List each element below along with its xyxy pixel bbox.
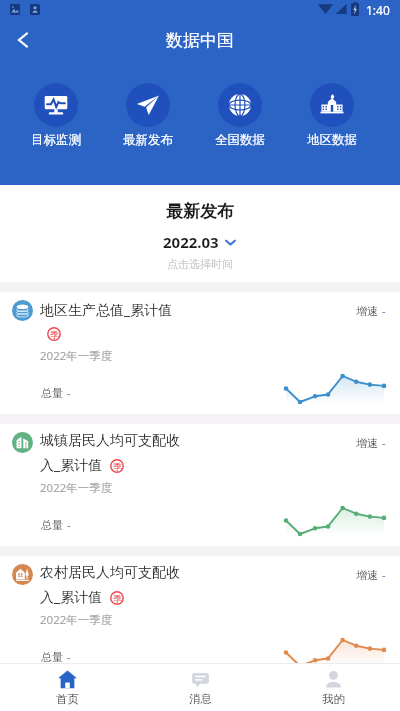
staticText: - bbox=[382, 303, 386, 318]
staticText: 总量 bbox=[41, 518, 63, 532]
staticText: 农村居民人均可支配收 bbox=[40, 564, 180, 582]
staticText: 消息 bbox=[189, 692, 212, 706]
button[interactable]: 目标监测 bbox=[9, 83, 102, 148]
button[interactable]: 地区生产总值_累计值 bbox=[0, 292, 400, 414]
staticText: 全国数据 bbox=[215, 132, 265, 148]
staticText: 增速 bbox=[356, 304, 378, 318]
button[interactable]: 地区数据 bbox=[286, 83, 378, 148]
staticText: 2022年一季度 bbox=[40, 480, 113, 496]
staticText: - bbox=[67, 385, 71, 400]
button[interactable]: Home bbox=[0, 664, 134, 711]
staticText: 2022年一季度 bbox=[40, 348, 113, 364]
staticText: 1:40 bbox=[366, 2, 390, 18]
staticText: 增速 bbox=[356, 436, 378, 450]
staticText: 2022年一季度 bbox=[40, 612, 113, 628]
staticText: 目标监测 bbox=[31, 132, 81, 148]
staticText: 总量 bbox=[41, 386, 63, 400]
button[interactable]: Messages bbox=[134, 664, 267, 711]
button[interactable]: 城镇居民人均可支配收 bbox=[0, 424, 400, 546]
staticText: 2022.03 bbox=[163, 232, 219, 252]
staticText: - bbox=[382, 435, 386, 450]
staticText: 点击选择时间 bbox=[167, 257, 233, 271]
other: Messages bbox=[191, 670, 210, 689]
staticText: 首页 bbox=[56, 692, 79, 706]
staticText: 最新发布 bbox=[166, 201, 234, 222]
other: Home bbox=[58, 670, 77, 689]
staticText: 季 bbox=[113, 593, 122, 604]
staticText: - bbox=[67, 649, 71, 664]
button[interactable]: 2022.03 bbox=[163, 232, 237, 252]
staticText: 入_累计值 bbox=[40, 455, 103, 474]
staticText: - bbox=[382, 567, 386, 582]
staticText: 季 bbox=[50, 329, 59, 340]
staticText: 地区生产总值_累计值 bbox=[40, 300, 173, 319]
staticText: 最新发布 bbox=[123, 132, 173, 148]
staticText: - bbox=[67, 517, 71, 532]
staticText: 城镇居民人均可支配收 bbox=[40, 432, 180, 450]
staticText: 地区数据 bbox=[307, 132, 357, 148]
button[interactable]: 农村居民人均可支配收 bbox=[0, 556, 400, 663]
staticText: 增速 bbox=[356, 568, 378, 582]
staticText: 总量 bbox=[41, 650, 63, 664]
other: Profile bbox=[324, 670, 343, 689]
staticText: 我的 bbox=[322, 692, 345, 706]
button[interactable]: 最新发布 bbox=[102, 83, 194, 148]
staticText: 季 bbox=[113, 461, 122, 472]
staticText: 数据中国 bbox=[166, 30, 234, 51]
button[interactable]: Back bbox=[6, 23, 40, 57]
button[interactable]: Profile bbox=[267, 664, 400, 711]
button[interactable]: 全国数据 bbox=[194, 83, 286, 148]
staticText: 入_累计值 bbox=[40, 587, 103, 606]
